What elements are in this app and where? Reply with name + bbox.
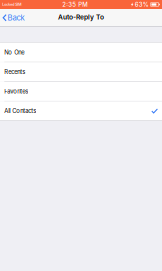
- staticText: Locked SIM: [2, 2, 21, 7]
- staticText: 2:35 PM: [62, 1, 87, 8]
- button[interactable]: No One: [0, 43, 162, 62]
- staticText: Favorites: [4, 88, 28, 95]
- staticText: Recents: [4, 68, 25, 75]
- button[interactable]: Favorites: [0, 82, 162, 101]
- staticText: 63%: [135, 1, 149, 8]
- staticText: All Contacts: [4, 107, 36, 114]
- button[interactable]: Recents: [0, 62, 162, 81]
- button[interactable]: All Contacts: [0, 101, 162, 120]
- staticText: Back: [7, 13, 24, 22]
- button[interactable]: Back: [0, 11, 27, 24]
- staticText: Auto-Reply To: [58, 13, 104, 21]
- staticText: No One: [4, 49, 24, 56]
